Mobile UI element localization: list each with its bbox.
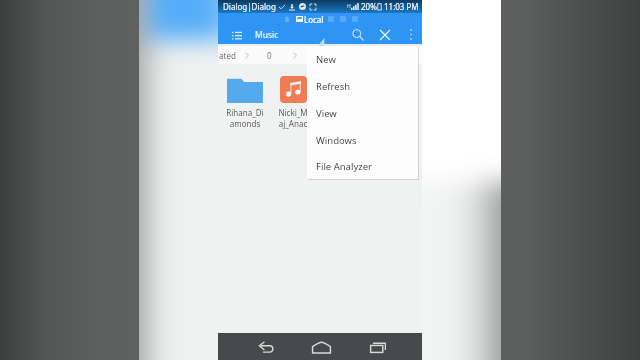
staticText: ated [219, 50, 236, 61]
staticText: 0 [267, 50, 272, 61]
button[interactable]: New [307, 46, 418, 73]
staticText: File Analyzer [316, 160, 372, 173]
staticText: View [316, 107, 337, 120]
staticText: 11:03 PM [384, 1, 419, 12]
staticText: Refresh [316, 80, 351, 93]
staticText: 20% [361, 1, 377, 12]
staticText: Dialog|Dialog [223, 1, 276, 12]
button[interactable]: Recent apps [367, 336, 389, 358]
button[interactable]: R V [317, 64, 365, 129]
button[interactable]: Back [255, 336, 277, 358]
staticText: Local [304, 14, 324, 25]
button[interactable]: Rihana_Di amonds [221, 64, 269, 129]
button[interactable]: View [307, 100, 418, 127]
button[interactable]: Home [310, 336, 332, 358]
button[interactable]: File Analyzer [307, 154, 418, 179]
staticText: Nicki_M aj_Anac [278, 107, 308, 129]
staticText: Windows [316, 134, 357, 147]
button[interactable]: Close [376, 26, 393, 43]
button[interactable]: Windows [307, 127, 418, 154]
button[interactable]: More options [403, 27, 418, 42]
staticText: Rihana_Di amonds [226, 107, 264, 129]
staticText: H [347, 3, 351, 10]
staticText: New [316, 53, 336, 66]
button[interactable]: Nicki_M aj_Anac [269, 64, 317, 129]
button[interactable]: Refresh [307, 73, 418, 100]
staticText: Music [255, 29, 279, 41]
button[interactable]: Navigation menu [229, 27, 245, 43]
button[interactable]: Search [349, 26, 366, 43]
